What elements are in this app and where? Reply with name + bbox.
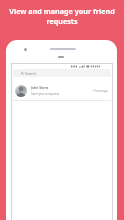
staticText: John Stone: [31, 85, 49, 90]
staticText: 1 hour ago: [93, 89, 108, 93]
staticText: Search: [25, 71, 36, 76]
button[interactable]: John Stone: [12, 81, 112, 100]
staticText: View and manage your friend requests: [6, 6, 118, 26]
staticText: Sent you a request: [31, 92, 59, 96]
button[interactable]: Search: [13, 69, 111, 77]
